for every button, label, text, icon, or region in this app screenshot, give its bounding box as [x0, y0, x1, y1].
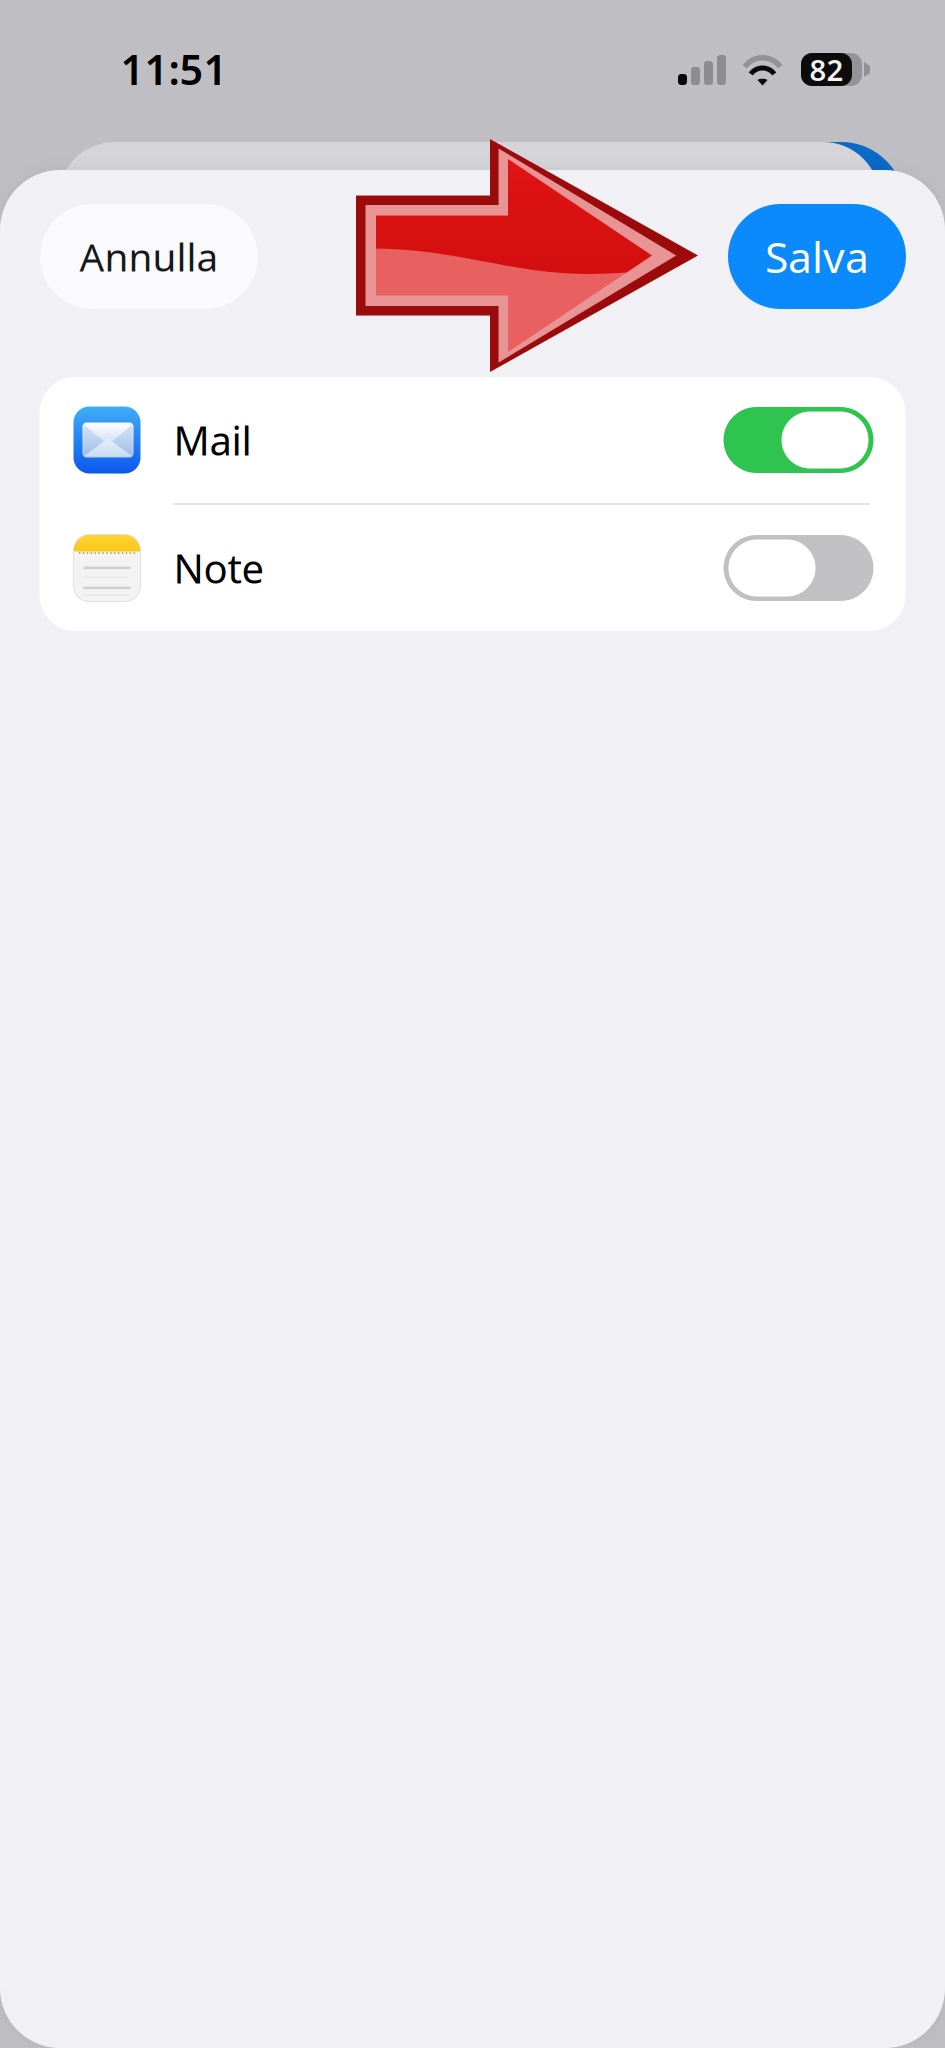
staticText: Note [173, 541, 264, 594]
button[interactable]: Annulla [40, 204, 258, 309]
button[interactable]: Salva [728, 204, 906, 309]
button[interactable]: Note [39, 505, 905, 631]
staticText: Annulla [79, 231, 218, 282]
staticText: 82 [809, 50, 843, 89]
button[interactable]: Mail [39, 377, 905, 503]
staticText: Mail [173, 413, 251, 466]
staticText: Salva [765, 228, 869, 285]
staticText: 11:51 [120, 42, 227, 96]
